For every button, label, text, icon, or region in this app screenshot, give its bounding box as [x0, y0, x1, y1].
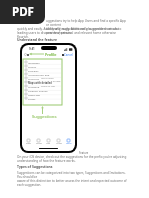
- staticText: quickly and easily. Additionally, sugges…: [17, 27, 122, 39]
- button[interactable]: Shortcuts: [25, 76, 61, 80]
- staticText: Arcade: [56, 142, 62, 144]
- button[interactable]: Apps: [45, 139, 52, 144]
- staticText: Authenticator app: [28, 73, 50, 76]
- staticText: Suggestions: [32, 114, 57, 120]
- button[interactable]: Maps with detailed: [25, 80, 61, 84]
- button[interactable]: Wallet: [25, 96, 61, 100]
- staticText: Apps: [46, 142, 51, 144]
- staticText: Search: [66, 142, 72, 144]
- button[interactable]: Photos: [25, 64, 61, 68]
- button[interactable]: Search: [65, 139, 72, 144]
- button[interactable]: Arcade: [55, 139, 62, 144]
- staticText: Check in App: [41, 85, 55, 88]
- staticText: Messages: [28, 61, 40, 64]
- staticText: Photos: [28, 65, 37, 68]
- button[interactable]: PDF: [0, 0, 45, 24]
- staticText: Maps with detailed: [28, 81, 52, 84]
- button[interactable]: Shopping: [25, 84, 61, 88]
- staticText: Shortcuts: [28, 77, 40, 80]
- staticText: Feature: [79, 151, 89, 155]
- staticText: 9:41: [29, 47, 35, 51]
- staticText: Podcasts: [28, 69, 39, 72]
- button[interactable]: Podcasts: [25, 68, 61, 72]
- staticText: Tap to open: [41, 77, 54, 80]
- staticText: Understand the feature: [17, 37, 57, 42]
- staticText: Types of Suggestions: [17, 164, 53, 169]
- staticText: in case details: [53, 80, 61, 84]
- button[interactable]: Messages: [25, 60, 61, 64]
- button[interactable]: Office app: [25, 92, 61, 96]
- staticText: uggestions try to help App Users and fin…: [46, 19, 128, 35]
- staticText: On your iOS device, check out the sugges…: [17, 155, 127, 163]
- button[interactable]: Today: [25, 139, 32, 144]
- staticText: Suggestions can be categorized into two …: [17, 171, 128, 187]
- button[interactable]: Weather outlook: [25, 88, 61, 92]
- staticText: Profile: [45, 52, 57, 57]
- staticText: Games: [36, 142, 42, 144]
- staticText: PDF: [12, 4, 34, 20]
- button[interactable]: Games: [35, 139, 42, 144]
- staticText: Shopping: [28, 85, 40, 88]
- button[interactable]: Authenticator app: [25, 72, 61, 76]
- staticText: Today: [26, 142, 31, 144]
- staticText: Weather outlook: [28, 89, 48, 92]
- staticText: Office app: [28, 93, 41, 96]
- staticText: Wallet: [28, 97, 36, 100]
- button[interactable]: Cancel: [64, 53, 73, 57]
